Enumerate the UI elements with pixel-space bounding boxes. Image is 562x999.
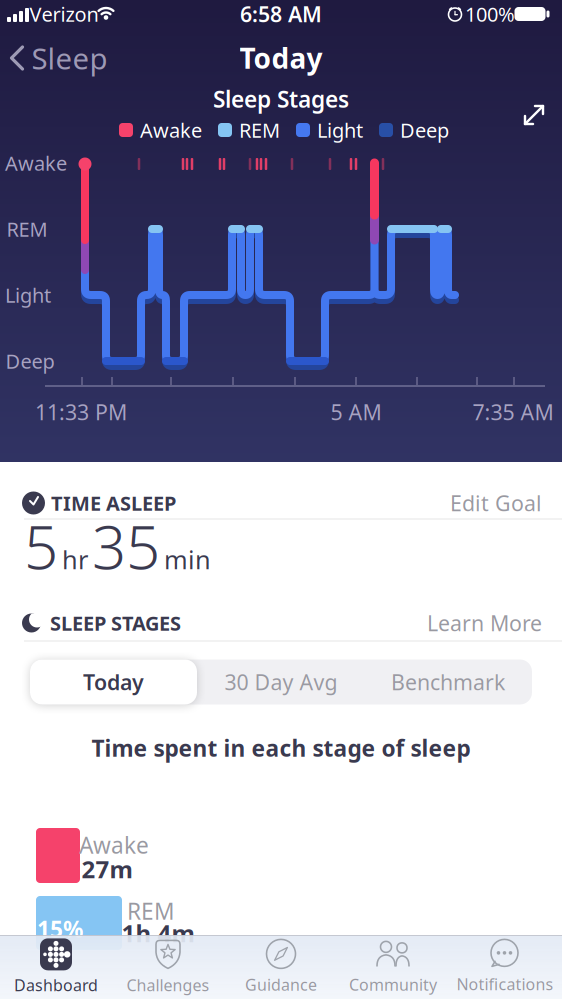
staticText: Sleep bbox=[31, 38, 107, 77]
staticText: Light bbox=[5, 282, 51, 308]
staticText: REM bbox=[127, 896, 175, 926]
staticText: Today bbox=[83, 668, 144, 696]
button[interactable]: Dashboard bbox=[14, 938, 98, 996]
button[interactable]: Guidance bbox=[245, 939, 317, 995]
staticText: Today bbox=[239, 39, 322, 77]
staticText: Awake bbox=[79, 830, 149, 860]
staticText: 11:33 PM bbox=[35, 398, 127, 426]
button[interactable]: Edit Goal bbox=[450, 489, 542, 517]
staticText: 35 bbox=[92, 506, 160, 586]
staticText: TIME ASLEEP bbox=[51, 490, 176, 516]
staticText: 30 Day Avg bbox=[224, 668, 337, 696]
staticText: Sleep Stages bbox=[213, 84, 349, 114]
staticText: SLEEP STAGES bbox=[50, 610, 181, 636]
button[interactable]: Challenges bbox=[126, 938, 209, 996]
staticText: Challenges bbox=[126, 974, 209, 996]
staticText: Verizon bbox=[29, 1, 98, 27]
staticText: 5 bbox=[24, 506, 58, 586]
staticText: Notifications bbox=[456, 973, 553, 995]
staticText: REM bbox=[239, 117, 280, 143]
staticText: Awake bbox=[5, 150, 67, 176]
staticText: 100% bbox=[465, 1, 515, 27]
staticText: 15% bbox=[37, 914, 83, 944]
staticText: 5 AM bbox=[330, 398, 381, 426]
staticText: Learn More bbox=[427, 609, 542, 637]
staticText: 7:35 AM bbox=[472, 398, 553, 426]
staticText: Dashboard bbox=[14, 974, 98, 996]
staticText: REM bbox=[6, 216, 47, 242]
staticText: Benchmark bbox=[391, 668, 505, 696]
staticText: Light bbox=[317, 117, 363, 143]
staticText: min bbox=[164, 543, 211, 576]
staticText: Time spent in each stage of sleep bbox=[91, 733, 470, 763]
button[interactable]: Benchmark bbox=[364, 659, 531, 704]
button[interactable]: Today bbox=[30, 659, 197, 704]
staticText: Deep bbox=[400, 117, 449, 143]
staticText: hr bbox=[62, 543, 88, 576]
staticText: 27m bbox=[81, 853, 132, 885]
button[interactable] bbox=[522, 103, 546, 127]
button[interactable]: Notifications bbox=[456, 939, 553, 995]
button[interactable]: Community bbox=[349, 939, 437, 995]
button[interactable]: 30 Day Avg bbox=[197, 659, 364, 704]
staticText: Community bbox=[349, 974, 437, 995]
staticText: Awake bbox=[140, 117, 202, 143]
staticText: 6:58 AM bbox=[240, 0, 322, 28]
staticText: Guidance bbox=[245, 974, 317, 995]
staticText: Edit Goal bbox=[450, 489, 542, 517]
staticText: 1h 4m bbox=[121, 917, 194, 949]
button[interactable]: Learn More bbox=[427, 609, 542, 637]
button[interactable]: Sleep bbox=[8, 38, 107, 77]
staticText: Deep bbox=[5, 348, 54, 374]
